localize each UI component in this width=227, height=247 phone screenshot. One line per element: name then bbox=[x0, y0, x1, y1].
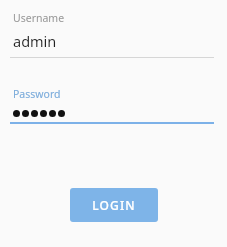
staticText: admin bbox=[13, 31, 57, 51]
staticText: Username bbox=[13, 11, 65, 25]
staticText: LOGIN bbox=[92, 197, 136, 213]
button[interactable]: Username bbox=[0, 11, 227, 58]
button[interactable]: Password bbox=[0, 87, 227, 124]
staticText: Password bbox=[13, 87, 61, 101]
button[interactable]: LOGIN bbox=[70, 188, 158, 222]
